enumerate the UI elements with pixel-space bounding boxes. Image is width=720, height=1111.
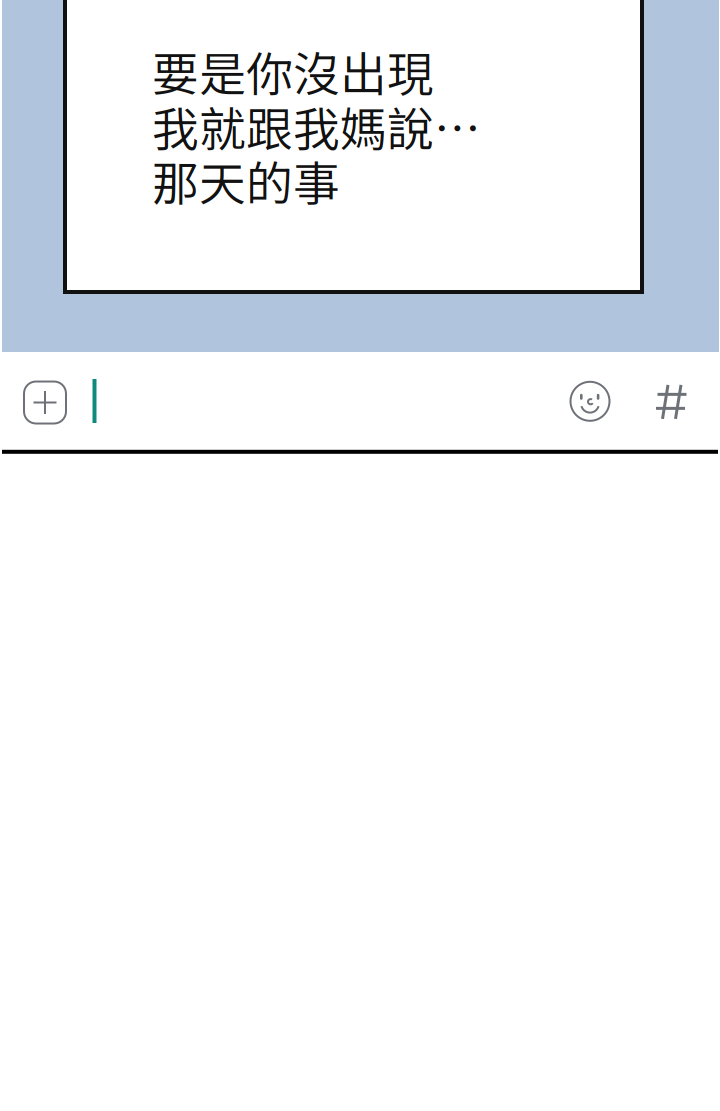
staticText: 我就跟我媽說⋯: [152, 92, 481, 160]
staticText: 那天的事: [152, 147, 340, 214]
button[interactable]: Add attachment: [24, 381, 66, 423]
button[interactable]: Write a comment: [86, 375, 546, 427]
staticText: 要是你沒出現: [152, 37, 434, 105]
button[interactable]: Hashtag: [655, 383, 689, 421]
button[interactable]: Emoji: [569, 380, 611, 422]
